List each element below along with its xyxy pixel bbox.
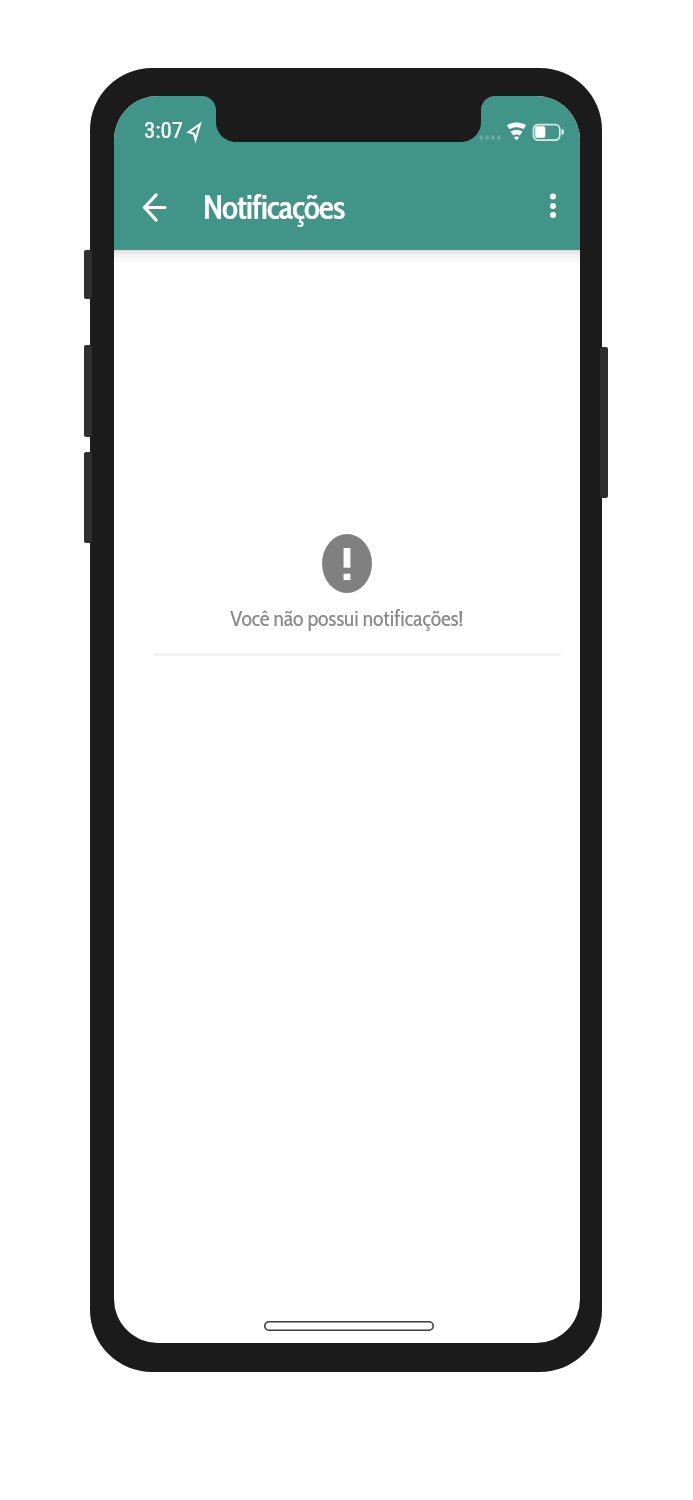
staticText: Notificações [203,187,345,227]
staticText: 3:07 [144,117,184,144]
staticText: Você não possui notificações! [230,605,464,632]
button[interactable]: More options [527,181,579,233]
button[interactable]: Back [128,181,180,233]
